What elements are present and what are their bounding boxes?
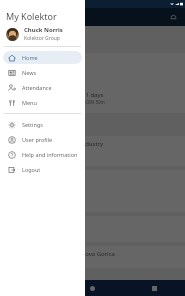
staticText: WORKDAY — [8, 69, 32, 76]
staticText: 11 days — [82, 91, 104, 99]
staticText: Home — [22, 54, 38, 61]
staticText: Settings — [22, 121, 43, 128]
staticText: ADDITIONAL INFO — [8, 80, 52, 87]
staticText: Latest posts — [8, 118, 66, 132]
button[interactable]: Menu — [3, 96, 82, 109]
staticText: User profile — [22, 136, 53, 143]
button[interactable]: Logout — [3, 163, 82, 176]
staticText: Kolektor at the advanced industry — [8, 140, 104, 148]
staticText: Workday — [8, 32, 55, 47]
staticText: New area in the center of Nova Gorica — [8, 250, 115, 258]
staticText: Chuck Norris — [24, 26, 63, 34]
button[interactable]: Home — [3, 51, 82, 64]
staticText: Menu — [22, 99, 37, 106]
staticText: 18:00h 50m — [80, 99, 105, 105]
staticText: My Kolektor — [6, 10, 57, 22]
button[interactable]: Attendance — [3, 81, 82, 94]
button[interactable]: Chuck Norris — [0, 24, 85, 44]
staticText: 21. March — [8, 57, 52, 69]
staticText: Attendance — [22, 84, 52, 91]
button[interactable]: User profile — [3, 133, 82, 146]
staticText: Help and information — [22, 151, 78, 158]
button[interactable]: Help and information — [3, 148, 82, 161]
button[interactable]: News — [3, 66, 82, 79]
staticText: Kolektor Group — [24, 35, 60, 42]
button[interactable]: Settings — [3, 118, 82, 131]
staticText: News — [22, 69, 37, 76]
staticText: Logout — [22, 166, 41, 173]
